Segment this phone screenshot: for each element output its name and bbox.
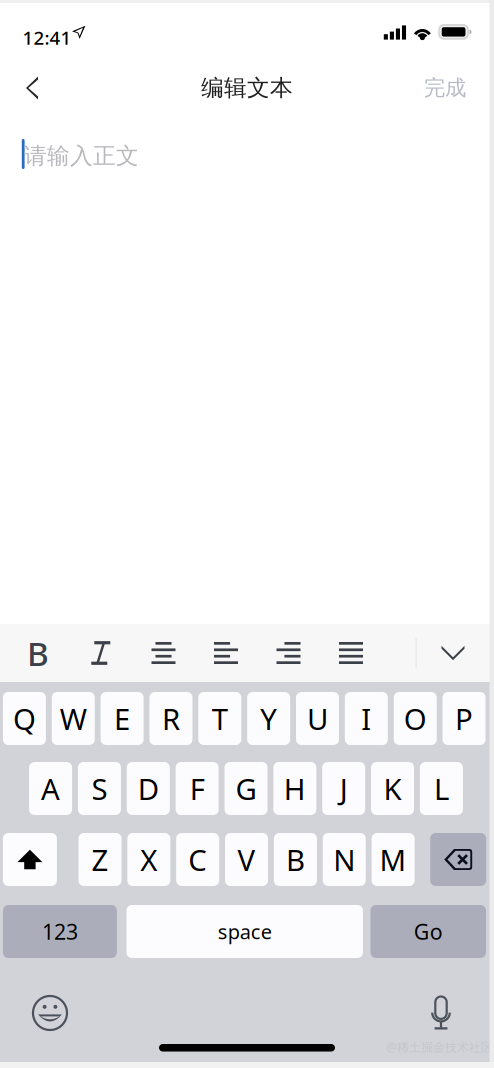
button[interactable]: M (372, 833, 415, 886)
button[interactable]: H (273, 762, 316, 815)
button[interactable]: B (274, 833, 317, 886)
button[interactable]: Justify (322, 624, 380, 682)
button[interactable]: R (149, 692, 192, 745)
button[interactable]: T (198, 692, 241, 745)
button[interactable]: L (420, 762, 463, 815)
staticText: W (60, 699, 87, 738)
staticText: F (190, 769, 205, 808)
staticText: I (361, 699, 371, 738)
button[interactable]: K (371, 762, 414, 815)
staticText: A (41, 769, 60, 808)
button[interactable]: Align center (134, 624, 192, 682)
staticText: J (340, 769, 348, 808)
button[interactable]: D (127, 762, 170, 815)
button[interactable]: Q (3, 692, 46, 745)
staticText: Q (13, 699, 36, 738)
staticText: 请输入正文 (24, 142, 139, 170)
staticText: R (162, 699, 180, 738)
button[interactable]: Emoji (20, 989, 80, 1037)
button[interactable]: O (394, 692, 437, 745)
button[interactable]: Dictation (411, 989, 471, 1037)
staticText: E (114, 699, 130, 738)
staticText: Z (91, 840, 108, 879)
staticText: U (307, 699, 328, 738)
staticText: @稀土掘金技术社区 (386, 1039, 493, 1055)
staticText: 12:41 (22, 25, 71, 50)
button[interactable]: W (52, 692, 95, 745)
button[interactable]: Numbers (3, 905, 117, 958)
staticText: M (380, 840, 407, 879)
staticText: S (91, 769, 107, 808)
staticText: G (235, 769, 256, 808)
button[interactable]: J (322, 762, 365, 815)
button[interactable]: N (323, 833, 366, 886)
staticText: Go (414, 917, 443, 946)
staticText: space (218, 918, 272, 945)
button[interactable]: Align left (197, 624, 255, 682)
staticText: 123 (42, 917, 78, 946)
button[interactable]: I (345, 692, 388, 745)
staticText: O (404, 699, 427, 738)
button[interactable]: V (225, 833, 268, 886)
staticText: N (333, 840, 355, 879)
button[interactable]: Y (247, 692, 290, 745)
button[interactable]: F (176, 762, 219, 815)
button[interactable]: S (78, 762, 121, 815)
button[interactable]: Back (9, 65, 55, 111)
staticText: K (384, 769, 402, 808)
staticText: B (286, 840, 305, 879)
button[interactable]: A (29, 762, 72, 815)
staticText: D (138, 769, 159, 808)
button[interactable]: X (127, 833, 170, 886)
staticText: P (455, 699, 473, 738)
staticText: H (284, 769, 306, 808)
staticText: B (27, 631, 49, 675)
staticText: 完成 (424, 75, 466, 101)
staticText: C (188, 840, 207, 879)
staticText: L (434, 769, 449, 808)
button[interactable]: Align right (259, 624, 317, 682)
staticText: X (140, 840, 157, 879)
button[interactable]: P (443, 692, 486, 745)
button[interactable]: Italic (72, 624, 130, 682)
button[interactable]: E (101, 692, 144, 745)
button[interactable]: Shift (3, 833, 57, 886)
button[interactable]: Bold (9, 624, 67, 682)
button[interactable]: Hide keyboard (420, 624, 486, 682)
staticText: V (238, 840, 256, 879)
button[interactable]: C (176, 833, 219, 886)
button[interactable]: Z (78, 833, 121, 886)
button[interactable]: Delete (430, 833, 486, 886)
button[interactable]: 完成 (412, 65, 478, 111)
button[interactable]: Space (126, 905, 363, 958)
staticText: T (212, 699, 228, 738)
staticText: 编辑文本 (201, 74, 293, 102)
button[interactable]: G (224, 762, 267, 815)
staticText: Y (260, 699, 277, 738)
button[interactable]: U (296, 692, 339, 745)
button[interactable]: Go (370, 905, 486, 958)
